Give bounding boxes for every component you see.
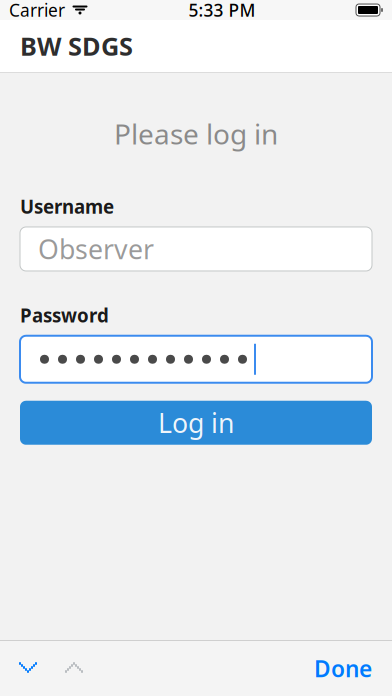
staticText: Observer bbox=[38, 231, 154, 267]
staticText: Username bbox=[20, 194, 114, 219]
button[interactable]: Next field bbox=[51, 646, 97, 690]
staticText: Carrier bbox=[9, 0, 65, 21]
staticText: Done bbox=[314, 653, 372, 683]
staticText: Log in bbox=[158, 405, 234, 440]
staticText: Please log in bbox=[114, 115, 278, 152]
staticText: 5:33 PM bbox=[188, 0, 255, 21]
button[interactable]: Previous field bbox=[5, 646, 51, 690]
button[interactable]: Log in bbox=[20, 401, 372, 445]
button[interactable]: Done bbox=[300, 646, 386, 690]
button[interactable] bbox=[20, 336, 372, 383]
staticText: BW SDGS bbox=[20, 29, 133, 63]
button[interactable]: Observer bbox=[20, 227, 372, 271]
staticText: Password bbox=[20, 303, 109, 328]
